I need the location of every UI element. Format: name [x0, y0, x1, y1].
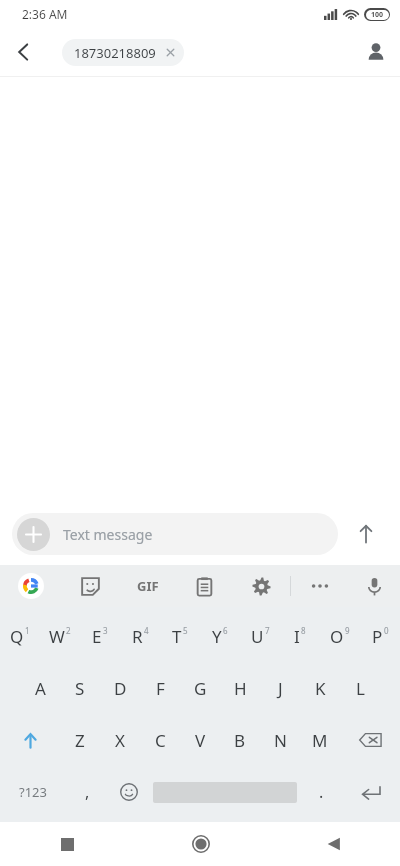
button[interactable]: W: [40, 611, 80, 662]
button[interactable]: .: [300, 766, 342, 818]
staticText: .: [319, 781, 324, 803]
button[interactable]: S: [60, 662, 100, 714]
staticText: GIF: [137, 577, 159, 595]
staticText: L: [356, 677, 365, 700]
staticText: W: [49, 625, 65, 648]
button[interactable]: More options: [291, 565, 348, 607]
button[interactable]: Y: [200, 611, 240, 662]
button[interactable]: X: [100, 714, 140, 766]
button[interactable]: J: [260, 662, 300, 714]
button[interactable]: Space: [150, 766, 300, 818]
button[interactable]: P: [360, 611, 400, 662]
staticText: 5: [183, 625, 188, 636]
staticText: D: [114, 677, 127, 700]
button[interactable]: 18730218809: [62, 39, 184, 66]
button[interactable]: Clipboard: [176, 565, 233, 607]
button[interactable]: Add attachment: [12, 513, 338, 555]
button[interactable]: ?123: [0, 766, 66, 818]
staticText: T: [172, 625, 182, 648]
button[interactable]: G: [180, 662, 220, 714]
button[interactable]: Add attachment: [17, 518, 50, 551]
button[interactable]: ,: [66, 766, 108, 818]
button[interactable]: K: [300, 662, 340, 714]
staticText: M: [312, 729, 328, 752]
staticText: V: [195, 729, 206, 752]
button[interactable]: Shift: [0, 714, 60, 766]
staticText: J: [278, 677, 283, 700]
staticText: G: [194, 677, 207, 700]
staticText: ,: [85, 781, 90, 803]
button[interactable]: O: [320, 611, 360, 662]
staticText: 7: [265, 625, 270, 636]
staticText: X: [115, 729, 125, 752]
staticText: F: [156, 677, 165, 700]
staticText: Text message: [63, 525, 153, 544]
button[interactable]: V: [180, 714, 220, 766]
button[interactable]: Back: [0, 28, 48, 76]
button[interactable]: Recent apps: [0, 822, 134, 866]
button[interactable]: R: [120, 611, 160, 662]
button[interactable]: Backspace: [340, 714, 400, 766]
button[interactable]: U: [240, 611, 280, 662]
staticText: 8: [301, 625, 306, 636]
staticText: H: [234, 677, 247, 700]
button[interactable]: Z: [60, 714, 100, 766]
button[interactable]: C: [140, 714, 180, 766]
staticText: 2: [66, 625, 71, 636]
staticText: 4: [144, 625, 149, 636]
staticText: 6: [223, 625, 228, 636]
staticText: S: [75, 677, 85, 700]
button[interactable]: F: [140, 662, 180, 714]
button[interactable]: M: [300, 714, 340, 766]
button[interactable]: E: [80, 611, 120, 662]
staticText: K: [315, 677, 326, 700]
staticText: Y: [212, 625, 222, 648]
staticText: 3: [103, 625, 108, 636]
staticText: ?123: [19, 783, 47, 801]
staticText: B: [234, 729, 246, 752]
button[interactable]: A: [20, 662, 60, 714]
button[interactable]: Home: [134, 822, 267, 866]
staticText: A: [35, 677, 46, 700]
staticText: O: [330, 625, 344, 648]
staticText: 100: [371, 10, 384, 20]
button[interactable]: N: [260, 714, 300, 766]
staticText: R: [132, 625, 143, 648]
button[interactable]: Google: [0, 565, 62, 607]
button[interactable]: Q: [0, 611, 40, 662]
button[interactable]: Back: [267, 822, 400, 866]
staticText: 18730218809: [74, 44, 156, 62]
staticText: Q: [10, 625, 24, 648]
staticText: C: [155, 729, 166, 752]
staticText: U: [251, 625, 264, 648]
button[interactable]: L: [340, 662, 380, 714]
button[interactable]: GIF: [119, 565, 176, 607]
staticText: 9: [345, 625, 350, 636]
button[interactable]: Settings: [233, 565, 290, 607]
button[interactable]: Voice input: [348, 565, 400, 607]
button[interactable]: B: [220, 714, 260, 766]
staticText: E: [92, 625, 102, 648]
button[interactable]: Enter: [342, 766, 400, 818]
button[interactable]: Contact details: [352, 28, 400, 76]
staticText: 1: [25, 625, 30, 636]
staticText: P: [372, 625, 383, 648]
button[interactable]: I: [280, 611, 320, 662]
staticText: 2:36 AM: [22, 6, 68, 22]
button[interactable]: T: [160, 611, 200, 662]
staticText: Z: [75, 729, 85, 752]
button[interactable]: H: [220, 662, 260, 714]
button[interactable]: Emoji: [108, 766, 150, 818]
staticText: 0: [384, 625, 389, 636]
button[interactable]: Stickers: [62, 565, 119, 607]
button[interactable]: D: [100, 662, 140, 714]
staticText: N: [274, 729, 287, 752]
staticText: I: [294, 625, 300, 648]
button[interactable]: Send: [344, 512, 388, 556]
